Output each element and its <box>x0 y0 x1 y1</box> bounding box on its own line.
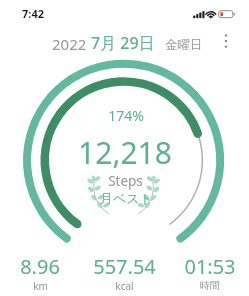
staticText: 7月 29日 <box>91 32 155 54</box>
staticText: 時間 <box>200 279 220 292</box>
staticText: 01:53 <box>184 253 236 280</box>
button[interactable]: 01:53 <box>174 253 246 294</box>
staticText: 557.54 <box>93 253 156 280</box>
button[interactable]: 557.54 <box>88 253 160 294</box>
staticText: kcal <box>115 279 134 293</box>
button[interactable]: More options <box>218 33 234 49</box>
staticText: 174% <box>108 106 144 125</box>
staticText: 12,218 <box>78 132 172 173</box>
staticText: 8.96 <box>20 253 60 280</box>
button[interactable]: 8.96 <box>4 253 76 294</box>
staticText: 7:42 <box>22 6 44 21</box>
staticText: 金曜日 <box>165 37 203 53</box>
staticText: 月ベスト <box>100 190 153 206</box>
staticText: 2022 <box>52 34 87 54</box>
staticText: Steps <box>108 172 143 190</box>
staticText: km <box>33 279 48 293</box>
